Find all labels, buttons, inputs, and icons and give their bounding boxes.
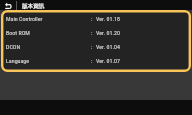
button[interactable]: Back: [0, 0, 16, 10]
staticText: Ver. 01.07: [96, 57, 120, 64]
staticText: Ver. 01.18: [96, 15, 120, 22]
staticText: :: [91, 43, 93, 50]
staticText: Ver. 01.04: [96, 43, 120, 50]
staticText: Language: [6, 57, 30, 64]
staticText: DCON: [6, 43, 21, 50]
staticText: :: [91, 29, 93, 36]
button[interactable]: Boot ROM: [1, 25, 191, 39]
staticText: Boot ROM: [6, 29, 30, 36]
button[interactable]: Main Controller: [1, 11, 191, 25]
button[interactable]: Language: [1, 53, 191, 67]
staticText: :: [91, 15, 93, 22]
staticText: :: [91, 57, 93, 64]
staticText: 版本資訊: [22, 3, 44, 10]
staticText: Main Controller: [6, 15, 43, 22]
staticText: Ver. 01.20: [96, 29, 120, 36]
button[interactable]: DCON: [1, 39, 191, 53]
